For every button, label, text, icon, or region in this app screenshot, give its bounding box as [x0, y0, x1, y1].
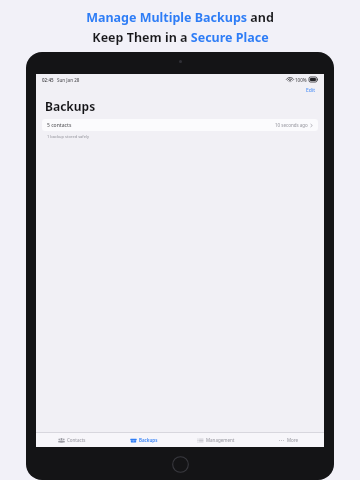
staticText: Contacts	[67, 437, 86, 443]
staticText: 02:45	[42, 77, 54, 83]
staticText: 10 seconds ago	[275, 122, 308, 128]
staticText: 1 backup stored safely	[47, 134, 90, 139]
staticText: More	[287, 437, 299, 443]
button[interactable]: Edit	[304, 86, 317, 95]
staticText: Backups	[139, 437, 158, 443]
staticText: Sun Jan 28	[57, 77, 80, 83]
staticText: Edit	[306, 87, 315, 94]
staticText: Management	[206, 437, 235, 443]
button[interactable]: Backups	[108, 433, 180, 447]
button[interactable]: 5 contacts	[42, 119, 318, 131]
staticText: 5 contacts	[47, 122, 72, 129]
staticText: Backups	[45, 98, 96, 114]
staticText: Keep Them in a Secure Place	[92, 29, 269, 46]
staticText: 100%	[295, 77, 307, 83]
button[interactable]: More	[252, 433, 324, 447]
button[interactable]: Contacts	[36, 433, 108, 447]
staticText: Manage Multiple Backups and	[86, 9, 274, 26]
button[interactable]: Management	[180, 433, 252, 447]
